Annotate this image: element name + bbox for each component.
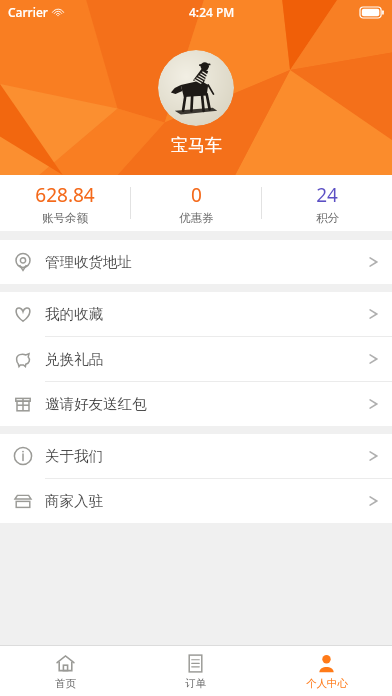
button[interactable]: 个人中心 xyxy=(261,646,392,696)
button[interactable]: 24 xyxy=(262,175,392,231)
staticText: 我的收藏 xyxy=(45,305,103,323)
staticText: 628.84 xyxy=(35,182,95,208)
staticText: 宝马车 xyxy=(171,135,222,156)
staticText: 订单 xyxy=(185,677,206,690)
button[interactable]: 我的收藏 xyxy=(0,292,392,337)
staticText: 24 xyxy=(316,182,338,208)
staticText: 账号余额 xyxy=(42,211,88,225)
button[interactable]: 管理收货地址 xyxy=(0,240,392,284)
button[interactable]: 628.84 xyxy=(0,175,130,231)
staticText: 邀请好友送红包 xyxy=(45,395,147,413)
staticText: 商家入驻 xyxy=(45,492,103,510)
button[interactable]: 订单 xyxy=(130,646,261,696)
staticText: 兑换礼品 xyxy=(45,350,103,368)
button[interactable]: Profile avatar xyxy=(158,50,234,126)
staticText: 首页 xyxy=(55,677,76,690)
button[interactable]: 兑换礼品 xyxy=(0,337,392,382)
staticText: 优惠券 xyxy=(179,211,214,225)
staticText: 积分 xyxy=(316,211,339,225)
button[interactable]: 关于我们 xyxy=(0,434,392,479)
staticText: 4:24 PM xyxy=(189,4,235,20)
staticText: 0 xyxy=(191,182,202,208)
staticText: 关于我们 xyxy=(45,447,103,465)
staticText: 个人中心 xyxy=(306,677,348,690)
staticText: 管理收货地址 xyxy=(45,253,132,271)
button[interactable]: 邀请好友送红包 xyxy=(0,382,392,426)
staticText: Carrier xyxy=(8,4,48,20)
button[interactable]: 首页 xyxy=(0,646,130,696)
button[interactable]: 商家入驻 xyxy=(0,479,392,523)
button[interactable]: 0 xyxy=(131,175,261,231)
